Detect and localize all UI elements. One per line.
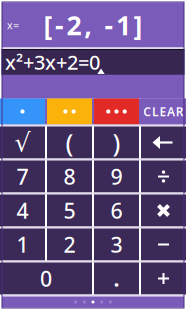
button[interactable]: x²+3x+2=0 xyxy=(2,49,184,74)
button[interactable]: 4 xyxy=(0,194,45,226)
staticText: 7 xyxy=(16,162,28,191)
button[interactable]: Three solutions xyxy=(94,98,139,124)
staticText: 0 xyxy=(40,264,52,293)
staticText: . xyxy=(113,264,119,293)
staticText: 8 xyxy=(63,162,75,191)
button[interactable]: √ xyxy=(0,126,45,158)
button[interactable]: 0 xyxy=(0,262,92,294)
button[interactable]: ) xyxy=(94,126,139,158)
button[interactable]: Minus xyxy=(141,228,186,260)
staticText: 1 xyxy=(16,230,28,259)
staticText: CLEAR xyxy=(143,103,184,119)
button[interactable]: 7 xyxy=(0,160,45,192)
staticText: 9 xyxy=(110,162,122,191)
button[interactable]: Backspace xyxy=(141,126,186,158)
button[interactable]: Multiply xyxy=(141,194,186,226)
staticText: 4 xyxy=(16,196,28,225)
button[interactable]: CLEAR xyxy=(141,98,186,124)
staticText: [-2, -1] xyxy=(43,7,143,43)
button[interactable]: 3 xyxy=(94,228,139,260)
staticText: ( xyxy=(65,126,73,159)
button[interactable]: 2 xyxy=(47,228,92,260)
staticText: 6 xyxy=(110,196,122,225)
staticText: x= xyxy=(7,18,19,32)
staticText: 2 xyxy=(63,230,75,259)
button[interactable]: . xyxy=(94,262,139,294)
button[interactable]: ( xyxy=(47,126,92,158)
button[interactable]: 5 xyxy=(47,194,92,226)
button[interactable]: Two solutions xyxy=(47,98,92,124)
staticText: √ xyxy=(14,128,30,157)
button[interactable]: 1 xyxy=(0,228,45,260)
button[interactable]: 6 xyxy=(94,194,139,226)
staticText: 5 xyxy=(63,196,75,225)
button[interactable]: One solution xyxy=(0,98,45,124)
button[interactable]: 9 xyxy=(94,160,139,192)
staticText: ) xyxy=(112,126,120,159)
staticText: 3 xyxy=(110,230,122,259)
button[interactable]: Divide xyxy=(141,160,186,192)
button[interactable]: 8 xyxy=(47,160,92,192)
button[interactable]: Plus xyxy=(141,262,186,294)
staticText: x²+3x+2=0 xyxy=(5,49,100,75)
